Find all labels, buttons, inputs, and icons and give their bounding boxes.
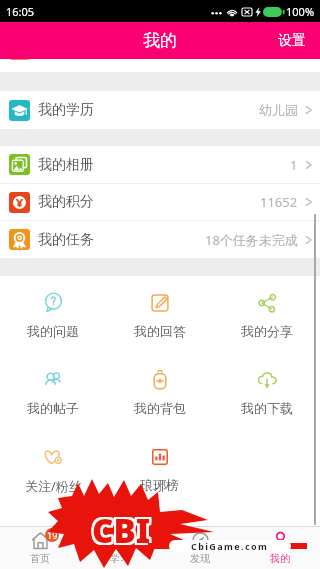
button[interactable]: 我的任务 xyxy=(0,221,320,258)
staticText: CBI xyxy=(94,506,153,551)
staticText: 我的问题 xyxy=(27,323,79,339)
staticText: CBI xyxy=(92,508,151,553)
staticText: 我的 xyxy=(143,30,177,51)
staticText: CBI xyxy=(90,508,149,553)
button[interactable]: 我的 xyxy=(240,527,320,569)
button[interactable]: 琅琊榜 xyxy=(106,430,213,507)
staticText: CBI xyxy=(90,510,149,555)
button[interactable]: 19 xyxy=(0,527,80,569)
staticText: 我的回答 xyxy=(134,323,186,339)
button[interactable]: 关注/粉丝 xyxy=(0,430,106,507)
button[interactable]: 我的下载 xyxy=(213,353,320,430)
staticText: 关注/粉丝 xyxy=(25,477,82,495)
button[interactable]: 我的积分 xyxy=(0,184,320,220)
staticText: 我的 xyxy=(270,552,290,565)
staticText: 我的背包 xyxy=(134,400,186,416)
staticText: 我的任务 xyxy=(38,231,94,249)
staticText: 19 xyxy=(47,529,58,541)
staticText: 100% xyxy=(286,4,315,19)
staticText: 首页 xyxy=(30,552,50,565)
staticText: CbiGame.com xyxy=(191,540,269,552)
button[interactable]: 我的相册 xyxy=(0,146,320,183)
staticText: 学习 xyxy=(110,552,130,565)
staticText: 我的相册 xyxy=(38,156,94,174)
staticText: CBI xyxy=(92,508,151,553)
staticText: 琅琊榜 xyxy=(140,477,179,493)
button[interactable]: 我的问题 xyxy=(0,276,106,353)
staticText: CBI xyxy=(94,510,153,555)
button[interactable]: 发现 xyxy=(160,527,240,569)
button[interactable]: 我的背包 xyxy=(106,353,213,430)
staticText: 设置 xyxy=(278,32,306,50)
staticText: CBI xyxy=(94,508,153,553)
staticText: 16:05 xyxy=(6,4,35,19)
staticText: 1 xyxy=(290,156,298,174)
staticText: 我的分享 xyxy=(241,323,293,339)
button[interactable]: 我的回答 xyxy=(106,276,213,353)
staticText: CBI xyxy=(92,506,151,551)
button[interactable]: 设置 xyxy=(264,24,320,58)
button[interactable]: 学习 xyxy=(80,527,160,569)
staticText: 我的下载 xyxy=(241,400,293,416)
staticText: 我的帖子 xyxy=(27,400,79,416)
staticText: 我的学历 xyxy=(38,101,94,119)
button[interactable]: 我的学历 xyxy=(0,91,320,129)
button[interactable]: 我的分享 xyxy=(213,276,320,353)
staticText: CBI xyxy=(92,510,151,555)
staticText: 我的积分 xyxy=(38,193,94,211)
staticText: 11652 xyxy=(260,193,298,211)
staticText: CBI xyxy=(90,506,149,551)
staticText: 幼儿园 xyxy=(259,102,298,118)
button[interactable]: 我的帖子 xyxy=(0,353,106,430)
staticText: 发现 xyxy=(190,552,210,565)
staticText: 18个任务未完成 xyxy=(205,231,298,249)
